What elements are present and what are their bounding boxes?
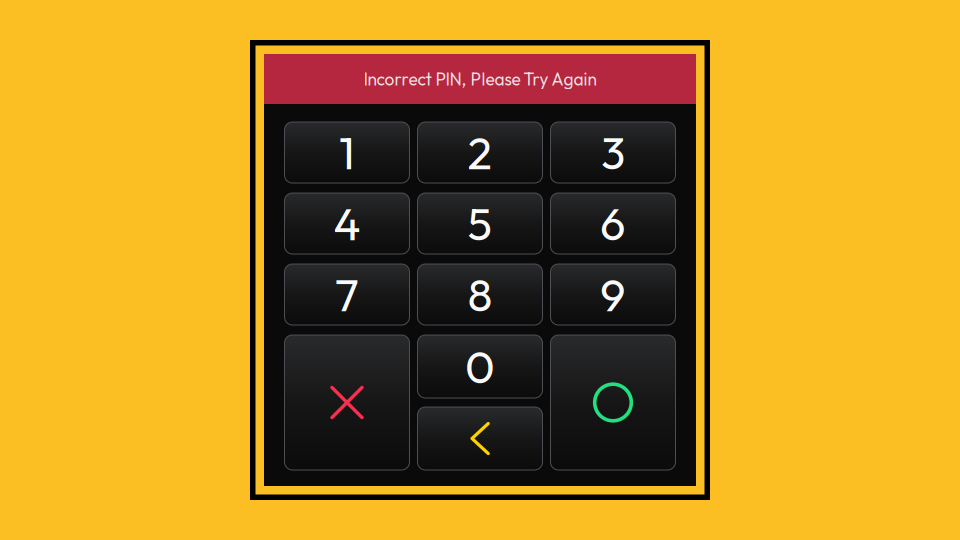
staticText: Incorrect PIN, Please Try Again [363, 68, 596, 90]
button[interactable]: Cancel [284, 335, 409, 470]
staticText: 6 [600, 195, 626, 252]
staticText: 3 [601, 124, 625, 181]
staticText: 7 [335, 266, 359, 323]
button[interactable]: 5 [417, 193, 542, 254]
staticText: 4 [333, 195, 360, 252]
button[interactable]: 7 [284, 264, 409, 325]
staticText: 8 [467, 266, 492, 323]
button[interactable]: 9 [550, 264, 675, 325]
button[interactable]: 2 [417, 122, 542, 183]
button[interactable]: Confirm [550, 335, 675, 470]
button[interactable]: 8 [417, 264, 542, 325]
staticText: 2 [467, 124, 492, 181]
button[interactable]: Delete [417, 407, 542, 470]
button[interactable]: 0 [417, 335, 542, 398]
staticText: 1 [339, 124, 355, 181]
button[interactable]: 4 [284, 193, 409, 254]
staticText: 9 [600, 266, 626, 323]
button[interactable]: 6 [550, 193, 675, 254]
button[interactable]: 3 [550, 122, 675, 183]
staticText: 5 [467, 195, 492, 252]
button[interactable]: 1 [284, 122, 409, 183]
staticText: 0 [465, 338, 495, 395]
